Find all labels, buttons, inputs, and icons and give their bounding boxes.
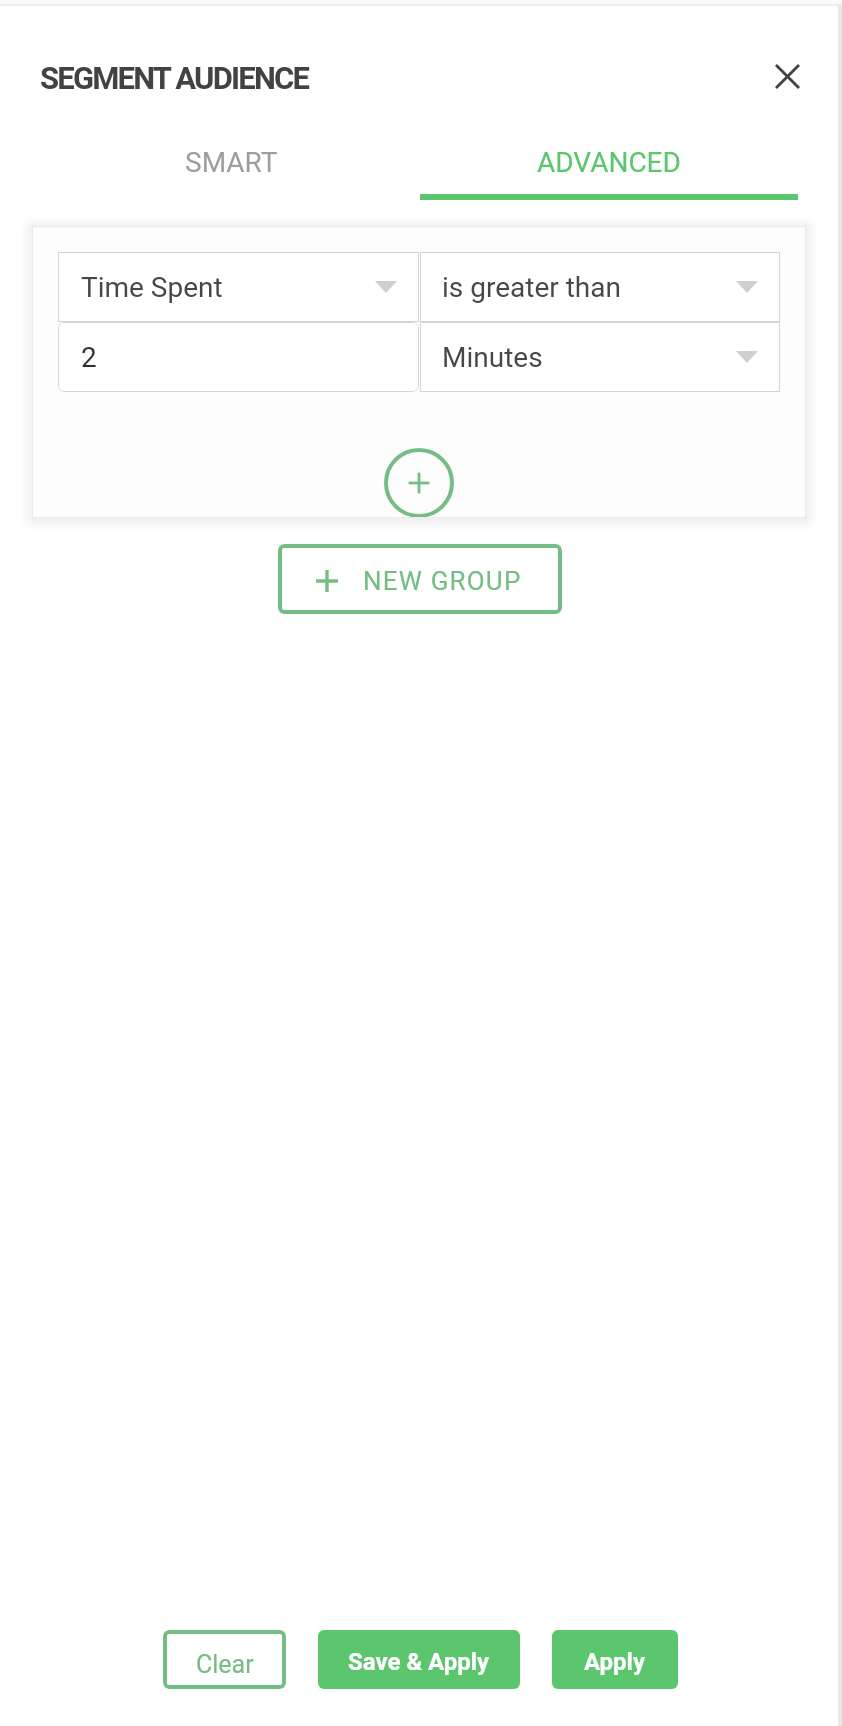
button[interactable]: is greater than [420,252,780,322]
staticText: SMART [185,146,278,179]
staticText: Save & Apply [348,1648,490,1676]
button[interactable]: Clear [163,1630,286,1689]
button[interactable]: Time Spent [58,252,419,322]
button[interactable]: Save & Apply [318,1630,520,1689]
staticText: 2 [81,341,97,374]
button[interactable]: Add condition [384,448,454,518]
button[interactable]: NEW GROUP [278,544,562,614]
staticText: SEGMENT AUDIENCE [40,60,309,96]
button[interactable]: SMART [42,128,420,196]
button[interactable]: Minutes [420,322,780,392]
staticText: ADVANCED [537,146,681,179]
staticText: Apply [584,1648,646,1676]
button[interactable]: Apply [552,1630,678,1689]
staticText: NEW GROUP [363,566,522,596]
staticText: Time Spent [81,271,223,304]
staticText: Clear [196,1650,254,1679]
button[interactable]: Close [762,52,812,102]
staticText: Minutes [442,341,543,374]
button[interactable]: 2 [58,322,419,392]
staticText: is greater than [442,271,621,304]
button[interactable]: ADVANCED [420,128,798,196]
